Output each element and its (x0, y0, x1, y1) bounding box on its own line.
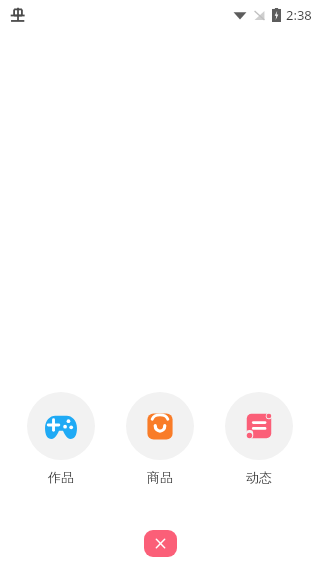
button[interactable]: 作品 (15, 392, 107, 485)
other: 动态 (225, 392, 293, 460)
staticText: 作品 (48, 469, 74, 485)
staticText: 商品 (147, 469, 173, 485)
staticText: 2:38 (286, 6, 312, 24)
button[interactable]: 商品 (114, 392, 206, 485)
button[interactable]: 动态 (213, 392, 305, 485)
staticText: 动态 (246, 469, 272, 485)
other: 商品 (126, 392, 194, 460)
button[interactable]: 关闭 (144, 530, 177, 557)
other: 作品 (27, 392, 95, 460)
